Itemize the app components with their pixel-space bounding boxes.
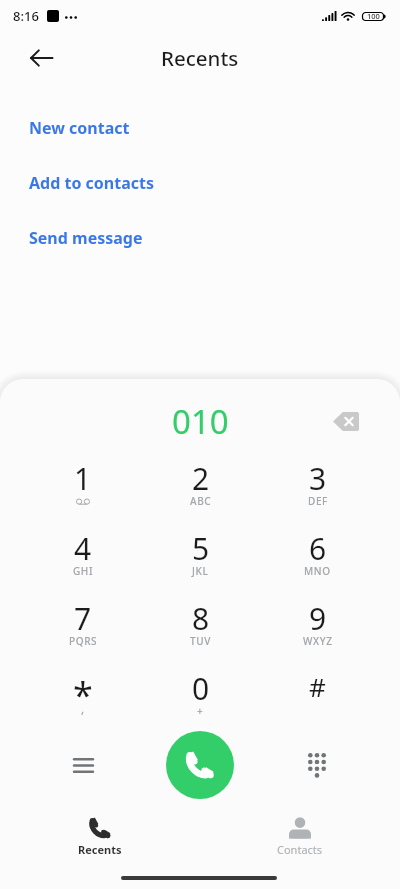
staticText: New contact <box>29 117 130 139</box>
staticText: # <box>309 669 326 704</box>
button[interactable]: Dialpad <box>295 743 339 787</box>
button[interactable]: Call <box>166 731 234 799</box>
button[interactable]: 9 <box>259 596 376 666</box>
staticText: 8:16 <box>13 7 39 25</box>
staticText: WXYZ <box>303 634 333 648</box>
staticText: 3 <box>309 458 327 499</box>
staticText: Add to contacts <box>29 172 154 194</box>
staticText: 7 <box>74 598 92 639</box>
button[interactable]: 2 <box>142 456 259 526</box>
staticText: 8 <box>192 598 210 639</box>
staticText: Recents <box>78 842 122 857</box>
button[interactable]: 1 <box>24 456 142 526</box>
staticText: 5 <box>192 528 210 569</box>
button[interactable]: Call log menu <box>61 743 105 787</box>
staticText: 1 <box>74 458 92 499</box>
button[interactable]: Add to contacts <box>0 155 400 210</box>
staticText: 9 <box>309 598 327 639</box>
button[interactable]: 6 <box>259 526 376 596</box>
button[interactable]: 7 <box>24 596 142 666</box>
staticText: JKL <box>192 564 209 578</box>
button[interactable]: New contact <box>0 100 400 155</box>
staticText: TUV <box>190 634 211 648</box>
staticText: Contacts <box>277 842 323 857</box>
staticText: 0 <box>192 668 210 709</box>
staticText: , <box>81 700 85 716</box>
button[interactable]: # <box>259 666 376 736</box>
staticText: + <box>197 704 204 718</box>
button[interactable]: 5 <box>142 526 259 596</box>
staticText: PQRS <box>69 634 98 648</box>
staticText: MNO <box>304 564 331 578</box>
staticText: 2 <box>192 458 210 499</box>
staticText: GHI <box>73 564 94 578</box>
button[interactable]: Send message <box>0 210 400 265</box>
staticText: ABC <box>190 494 212 508</box>
button[interactable]: 0 <box>142 666 259 736</box>
button[interactable]: 3 <box>259 456 376 526</box>
button[interactable]: Back <box>19 36 63 80</box>
staticText: DEF <box>308 494 328 508</box>
button[interactable]: Recents <box>0 814 200 874</box>
button[interactable]: 8 <box>142 596 259 666</box>
staticText: 010 <box>172 399 229 444</box>
staticText: 4 <box>74 528 92 569</box>
staticText: Send message <box>29 227 143 249</box>
staticText: 6 <box>309 528 327 569</box>
button[interactable]: * <box>24 666 142 736</box>
staticText: 100 <box>367 11 380 21</box>
staticText: * <box>73 670 93 719</box>
button[interactable]: 4 <box>24 526 142 596</box>
button[interactable]: Contacts <box>200 814 400 874</box>
button[interactable]: Backspace <box>325 400 367 442</box>
staticText: Recents <box>161 44 239 72</box>
